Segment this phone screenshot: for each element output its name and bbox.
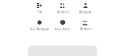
button[interactable]: Your Workspace	[28, 20, 51, 31]
staticText: Members	[79, 27, 91, 31]
staticText: Workspace	[79, 10, 92, 14]
button[interactable]: Appearance	[51, 20, 74, 31]
staticText: Members	[56, 10, 68, 14]
staticText: Plan	[36, 10, 42, 14]
button[interactable]: Members	[51, 3, 74, 14]
staticText: Appearance	[54, 27, 70, 31]
button[interactable]: Members	[74, 20, 97, 31]
button[interactable]: Plan	[28, 3, 51, 14]
button[interactable]: Workspace	[74, 3, 97, 14]
staticText: Your Workspace	[29, 27, 49, 31]
